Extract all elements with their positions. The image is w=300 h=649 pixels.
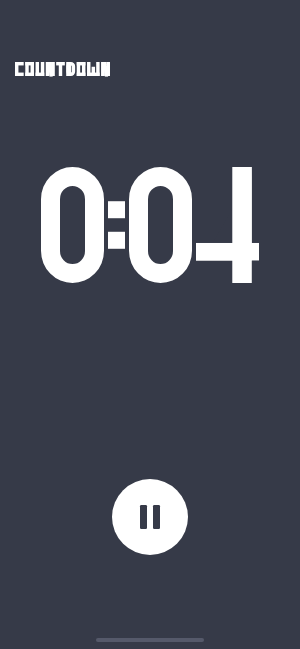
button[interactable]: Pause <box>112 479 188 555</box>
